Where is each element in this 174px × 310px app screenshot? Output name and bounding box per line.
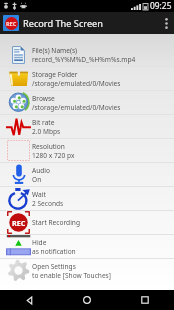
staticText: /storage/emulated/0/Movies: [32, 79, 121, 88]
staticText: 09:25: [150, 0, 172, 11]
button[interactable]: Browse: [0, 91, 174, 115]
staticText: Audio: [32, 166, 51, 175]
staticText: to enable [Show Touches]: [32, 271, 111, 280]
button[interactable]: Storage Folder: [0, 67, 174, 91]
button[interactable]: Wait: [0, 187, 174, 211]
button[interactable]: Hide: [0, 235, 174, 259]
staticText: Bit rate: [32, 118, 55, 127]
staticText: 2.0 Mbps: [32, 127, 61, 136]
staticText: REC: [6, 20, 17, 27]
button[interactable]: Open Settings: [0, 259, 174, 283]
staticText: record_%Y%M%D_%H%m%s.mp4: [32, 55, 136, 64]
staticText: Resolution: [32, 142, 65, 151]
staticText: Browse: [32, 94, 55, 103]
button[interactable]: Home: [58, 290, 116, 310]
staticText: File(s) Name(s): [32, 46, 78, 55]
staticText: 1280 x 720 px: [32, 151, 75, 160]
staticText: Hide: [32, 238, 47, 247]
staticText: Start Recording: [32, 218, 80, 227]
button[interactable]: File(s) Name(s): [0, 43, 174, 67]
button[interactable]: Recents: [116, 290, 174, 310]
staticText: 2 Seconds: [32, 199, 64, 208]
button[interactable]: More options: [158, 13, 174, 33]
staticText: REC: [12, 218, 26, 228]
staticText: Wait: [32, 190, 46, 199]
button[interactable]: REC: [0, 211, 174, 235]
button[interactable]: Bit rate: [0, 115, 174, 139]
staticText: Open Settings: [32, 262, 76, 271]
staticText: as notification: [32, 247, 76, 256]
button[interactable]: Resolution: [0, 139, 174, 163]
staticText: On: [32, 175, 42, 184]
button[interactable]: Audio: [0, 163, 174, 187]
staticText: /storage/emulated/0/Movies: [32, 103, 121, 112]
staticText: Record The Screen: [23, 17, 103, 30]
button[interactable]: Back: [0, 290, 58, 310]
staticText: Storage Folder: [32, 70, 78, 79]
